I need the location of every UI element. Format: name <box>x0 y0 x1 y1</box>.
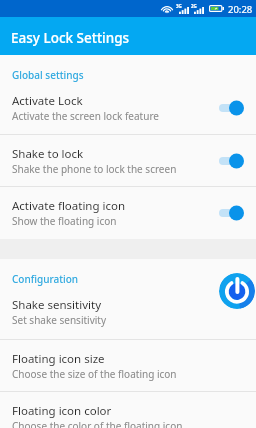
staticText: Choose the color of the floating icon <box>12 419 183 428</box>
staticText: Easy Lock Settings <box>11 29 130 47</box>
button[interactable]: Toggle <box>219 100 244 116</box>
staticText: Shake to lock <box>12 146 84 162</box>
button[interactable]: Shake to lock <box>0 135 256 186</box>
button[interactable]: Floating icon color <box>0 392 256 428</box>
staticText: Activate the screen lock feature <box>12 109 159 123</box>
staticText: 2G <box>191 3 197 9</box>
staticText: Choose the size of the floating icon <box>12 367 177 381</box>
button[interactable]: Activate Lock <box>0 82 256 134</box>
staticText: Configuration <box>12 272 79 286</box>
button[interactable]: Floating icon size <box>0 340 256 391</box>
button[interactable]: Shake sensitivity <box>0 286 256 339</box>
staticText: Shake sensitivity <box>12 297 102 313</box>
button[interactable]: Power <box>219 273 255 309</box>
staticText: Activate Lock <box>12 93 83 109</box>
staticText: Activate floating icon <box>12 198 126 214</box>
staticText: Global settings <box>12 68 84 82</box>
staticText: Show the floating icon <box>12 214 117 228</box>
staticText: 20:28 <box>228 3 253 16</box>
button[interactable]: Toggle <box>219 205 244 221</box>
button[interactable]: Toggle <box>219 153 244 169</box>
staticText: Floating icon color <box>12 403 112 419</box>
button[interactable]: Activate floating icon <box>0 187 256 239</box>
staticText: Floating icon size <box>12 351 105 367</box>
staticText: 3G <box>176 3 182 9</box>
staticText: Shake the phone to lock the screen <box>12 162 177 176</box>
staticText: Set shake sensitivity <box>12 313 107 327</box>
